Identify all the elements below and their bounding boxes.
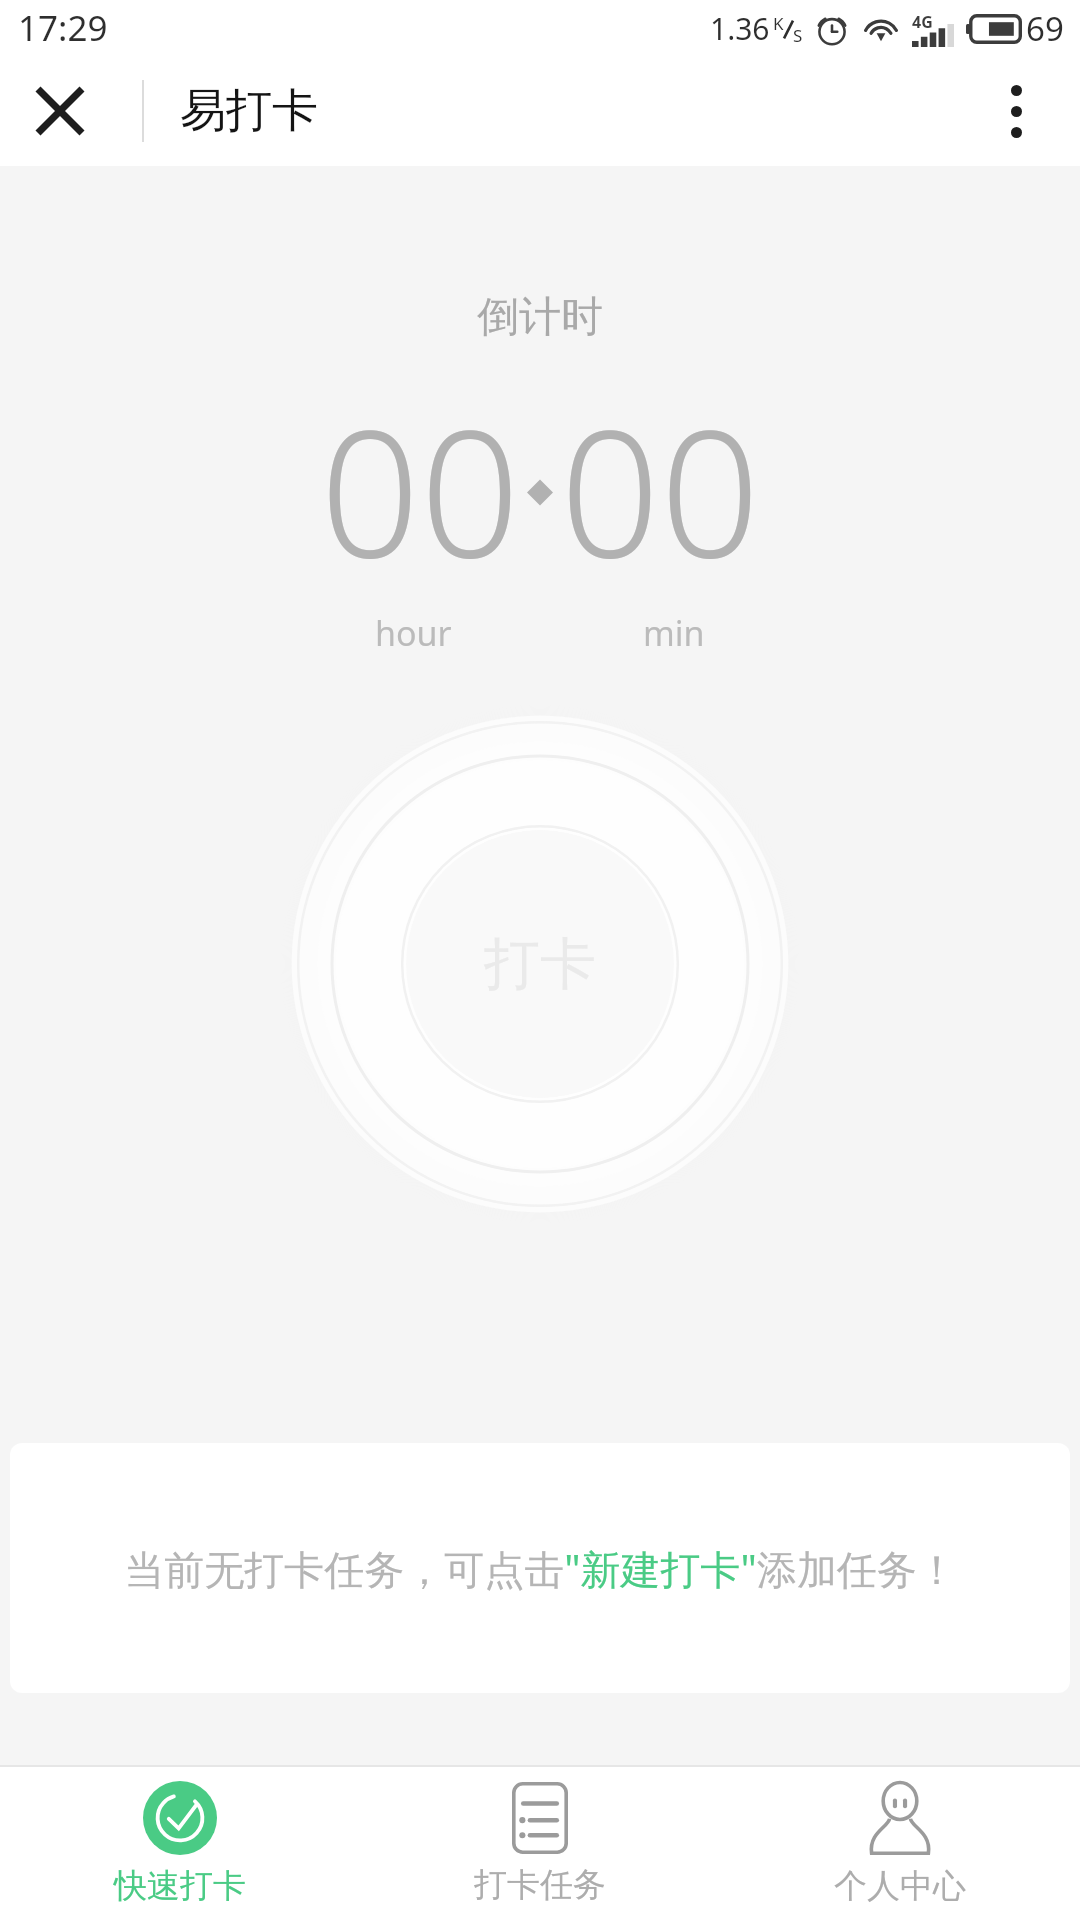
staticText: 17:29 [18, 4, 108, 52]
staticText: 易打卡 [180, 82, 318, 140]
button[interactable]: 打卡任务 [360, 1767, 720, 1920]
button[interactable]: 打卡 [280, 704, 800, 1224]
staticText: 00 [320, 370, 520, 608]
button[interactable]: 快速打卡 [0, 1767, 360, 1920]
staticText: 69 [1026, 6, 1064, 51]
button[interactable]: More options [974, 69, 1058, 153]
button[interactable]: Close [18, 69, 102, 153]
staticText: 个人中心 [834, 1865, 966, 1907]
staticText: 倒计时 [477, 291, 603, 344]
staticText: 当前无打卡任务，可点击"新建打卡"添加任务！ [124, 1541, 957, 1596]
staticText: 00 [560, 370, 760, 608]
staticText: 快速打卡 [114, 1865, 246, 1907]
button[interactable]: 个人中心 [720, 1767, 1080, 1920]
staticText: 4G [912, 11, 933, 33]
button[interactable]: 当前无打卡任务，可点击"新建打卡"添加任务！ [10, 1443, 1070, 1693]
staticText: min [643, 610, 705, 656]
staticText: 打卡任务 [474, 1864, 606, 1906]
staticText: hour [375, 610, 452, 656]
staticText: S [793, 24, 803, 46]
staticText: K [773, 12, 784, 34]
staticText: 1.36 [710, 8, 770, 49]
staticText: 打卡 [484, 929, 596, 1000]
